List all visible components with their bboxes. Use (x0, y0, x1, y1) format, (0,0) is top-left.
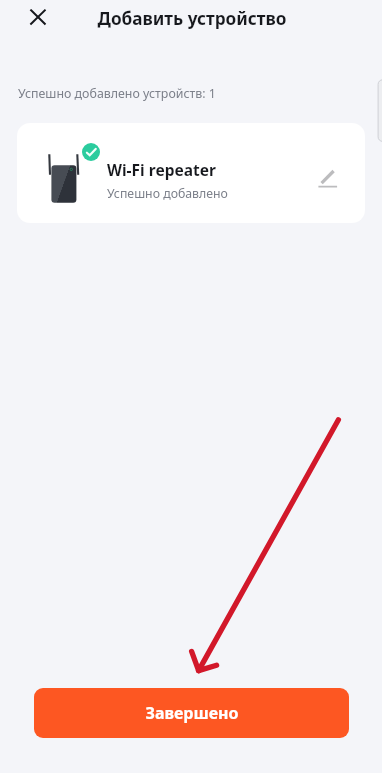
button[interactable]: Edit (317, 157, 349, 189)
button[interactable]: Завершено (34, 688, 349, 738)
staticText: Успешно добавлено (107, 185, 228, 202)
staticText: Добавить устройство (1, 7, 382, 30)
staticText: Wi-Fi repeater (107, 159, 216, 180)
button[interactable]: Close (22, 1, 54, 33)
staticText: Завершено (145, 702, 239, 724)
staticText: Успешно добавлено устройств: 1 (18, 85, 216, 102)
button[interactable]: Wi-Fi repeater (17, 123, 365, 223)
